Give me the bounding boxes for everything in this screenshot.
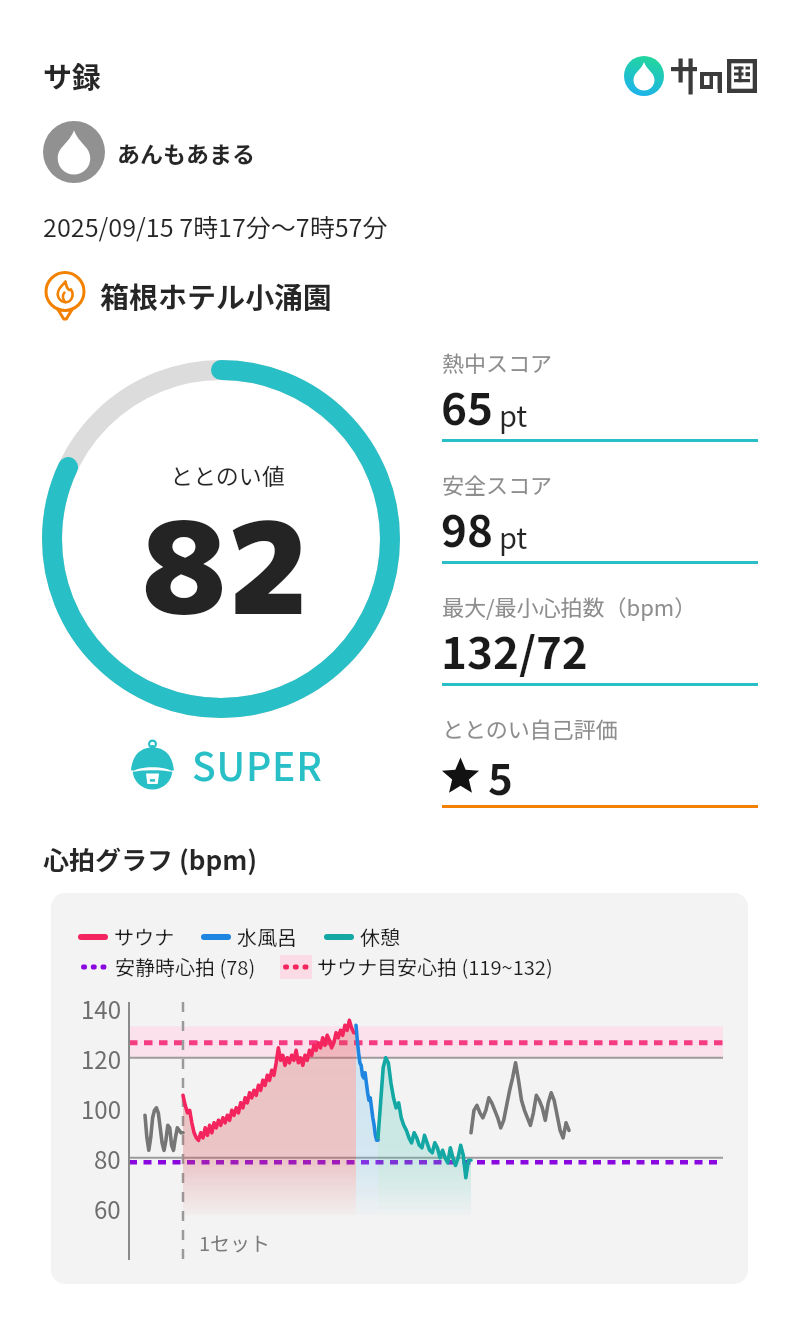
staticText: 82 bbox=[142, 477, 310, 654]
staticText: 安静時心拍 (78) bbox=[115, 952, 256, 981]
staticText: 98 bbox=[441, 496, 493, 560]
staticText: SUPER bbox=[192, 736, 323, 792]
staticText: 100 bbox=[81, 1091, 121, 1126]
staticText: あんもあまる bbox=[117, 136, 255, 169]
staticText: サ録 bbox=[43, 54, 102, 96]
staticText: 2025/09/15 7時17分〜7時57分 bbox=[43, 208, 388, 244]
button[interactable]: サの国 ロゴ bbox=[624, 56, 759, 96]
staticText: 80 bbox=[94, 1141, 121, 1176]
staticText: ととのい自己評価 bbox=[442, 712, 618, 744]
staticText: 休憩 bbox=[360, 922, 400, 951]
button[interactable]: あんもあまる bbox=[43, 121, 255, 183]
staticText: 最大/最小心拍数（bpm） bbox=[442, 590, 697, 622]
staticText: 65 bbox=[441, 374, 493, 438]
staticText: ととのい値 bbox=[170, 458, 285, 491]
button[interactable]: 箱根ホテル小涌園 bbox=[44, 271, 333, 321]
staticText: 心拍グラフ (bpm) bbox=[43, 840, 258, 878]
staticText: 水風呂 bbox=[237, 922, 297, 951]
staticText: 1セット bbox=[199, 1228, 271, 1257]
button[interactable]: SUPER bbox=[131, 739, 323, 795]
staticText: pt bbox=[499, 393, 528, 435]
staticText: サウナ目安心拍 (119~132) bbox=[317, 952, 553, 981]
staticText: 132/72 bbox=[441, 618, 588, 682]
staticText: 140 bbox=[81, 991, 121, 1026]
staticText: 120 bbox=[81, 1041, 121, 1076]
staticText: 60 bbox=[94, 1191, 121, 1226]
staticText: 安全スコア bbox=[442, 468, 553, 500]
staticText: サウナ bbox=[114, 922, 174, 951]
staticText: 熱中スコア bbox=[442, 346, 553, 378]
staticText: pt bbox=[499, 515, 528, 557]
staticText: 箱根ホテル小涌園 bbox=[100, 274, 333, 316]
staticText: 5 bbox=[488, 746, 513, 807]
